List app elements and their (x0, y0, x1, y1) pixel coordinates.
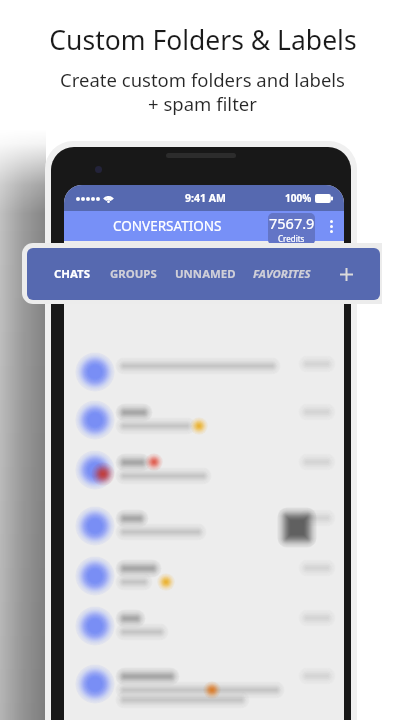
staticText: CONVERSATIONS (113, 217, 222, 235)
button[interactable]: More options (318, 211, 344, 241)
staticText: Create custom folders and labels + spam … (60, 67, 345, 116)
staticText: 100% (285, 191, 312, 205)
staticText: 7567.9 (269, 213, 315, 233)
button[interactable]: FAVORITES (253, 248, 311, 300)
button[interactable]: Add folder (326, 254, 366, 294)
staticText: Credits (278, 233, 305, 244)
staticText: FAVORITES (253, 266, 311, 282)
button[interactable]: GROUPS (110, 248, 157, 300)
button[interactable]: 7567.9 (268, 213, 315, 245)
staticText: Custom Folders & Labels (49, 22, 357, 58)
staticText: GROUPS (110, 266, 157, 282)
staticText: 9:41 AM (185, 191, 226, 205)
staticText: CHATS (54, 266, 90, 282)
button[interactable]: UNNAMED (175, 248, 236, 300)
staticText: UNNAMED (175, 266, 236, 282)
button[interactable]: CHATS (54, 248, 90, 300)
